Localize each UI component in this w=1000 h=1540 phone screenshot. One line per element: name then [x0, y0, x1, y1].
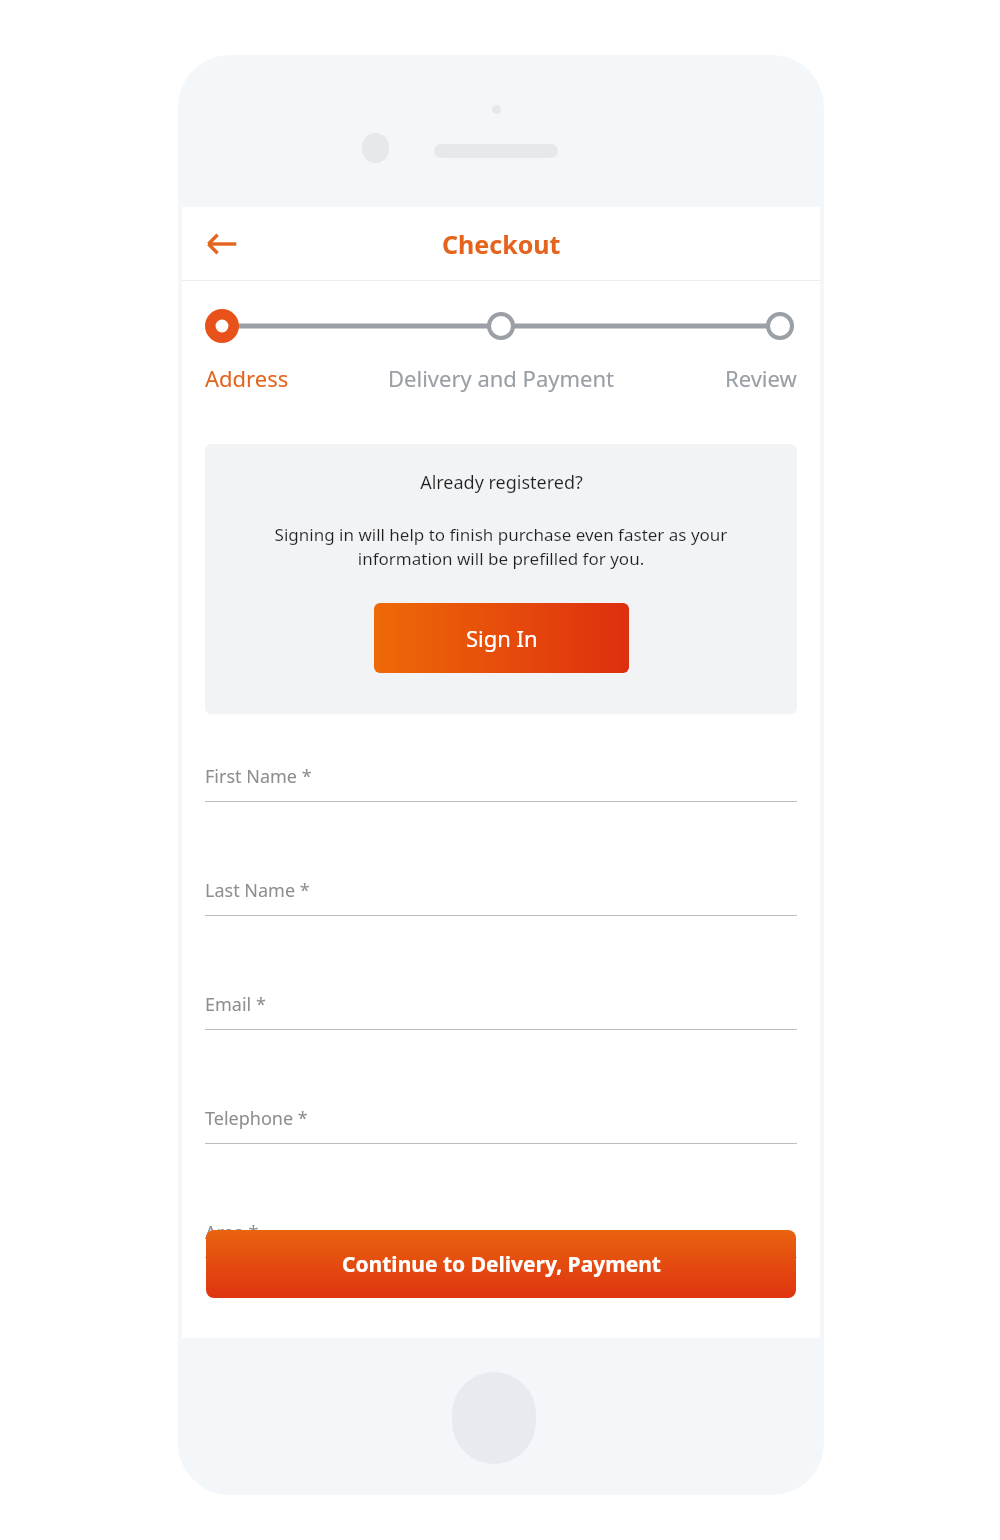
- button[interactable]: Sign In: [374, 603, 629, 673]
- staticText: Review: [725, 363, 797, 393]
- staticText: Signing in will help to finish purchase …: [227, 523, 775, 570]
- staticText: Address: [205, 363, 289, 393]
- staticText: Already registered?: [420, 470, 583, 495]
- button[interactable]: First Name *: [205, 742, 797, 856]
- staticText: Telephone *: [205, 1106, 308, 1131]
- staticText: Area *: [205, 1220, 259, 1245]
- staticText: Checkout: [442, 227, 561, 261]
- button[interactable]: Email *: [205, 970, 797, 1084]
- button[interactable]: Area *: [205, 1198, 797, 1312]
- staticText: Sign In: [466, 623, 538, 653]
- staticText: Continue to Delivery, Payment: [342, 1250, 661, 1279]
- button[interactable]: Back: [194, 216, 250, 272]
- staticText: Last Name *: [205, 878, 310, 903]
- button[interactable]: Telephone *: [205, 1084, 797, 1198]
- button[interactable]: Last Name *: [205, 856, 797, 970]
- staticText: First Name *: [205, 764, 312, 789]
- button[interactable]: Continue to Delivery, Payment: [206, 1230, 796, 1298]
- staticText: Email *: [205, 992, 266, 1017]
- staticText: Delivery and Payment: [388, 363, 615, 393]
